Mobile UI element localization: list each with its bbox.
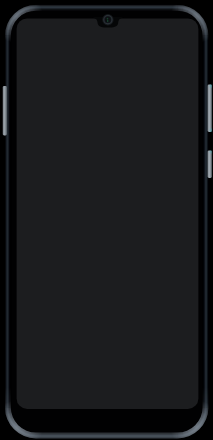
button[interactable]: Smartphone device (0, 0, 213, 440)
